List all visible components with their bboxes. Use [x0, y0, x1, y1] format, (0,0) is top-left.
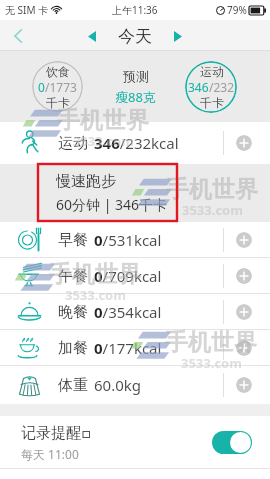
button[interactable]: 早餐 [0, 222, 270, 257]
staticText: 加餐 [58, 339, 88, 358]
button[interactable]: Add [236, 232, 252, 248]
button[interactable]: Add [236, 340, 252, 356]
button[interactable]: 晚餐 [0, 294, 270, 329]
button[interactable]: Next day [165, 23, 191, 49]
staticText: 千卡 [46, 95, 70, 110]
staticText: 0/354kcal [94, 302, 162, 322]
staticText: 运动 [58, 134, 88, 153]
staticText: 79% [227, 3, 247, 17]
button[interactable]: 运动 [185, 61, 237, 113]
staticText: 晚餐 [58, 303, 88, 322]
button[interactable]: Reminder toggle [212, 431, 252, 454]
staticText: 手机世界 [166, 175, 258, 204]
staticText: 手机世界 [49, 260, 141, 289]
staticText: 3533.com [182, 201, 243, 219]
button[interactable]: Add [236, 268, 252, 284]
button[interactable]: 慢速跑步 [0, 164, 270, 222]
button[interactable]: Back [0, 20, 36, 51]
button[interactable]: Add [236, 304, 252, 320]
button[interactable]: Previous day [79, 23, 105, 49]
staticText: 午餐 [58, 267, 88, 286]
staticText: 3533.com [73, 132, 134, 150]
staticText: 346 [188, 79, 209, 95]
staticText: /232 [209, 79, 235, 95]
staticText: 瘦88克 [115, 88, 156, 106]
staticText: 3533.com [65, 286, 126, 304]
staticText: /1773 [45, 79, 77, 95]
staticText: 体重 [58, 376, 88, 395]
staticText: 60.0kg [94, 375, 141, 395]
staticText: 3533.com [181, 354, 242, 372]
staticText: 346/232kcal [94, 133, 179, 153]
staticText: 0/709kcal [94, 266, 162, 286]
staticText: 预测 [123, 68, 149, 84]
button[interactable]: 记录提醒 [0, 416, 270, 469]
staticText: 千卡 [200, 95, 224, 110]
button[interactable]: 体重 [0, 366, 270, 404]
button[interactable]: 加餐 [0, 330, 270, 365]
button[interactable]: Add [236, 377, 252, 393]
staticText: 早餐 [58, 231, 88, 250]
staticText: 运动 [200, 64, 224, 79]
staticText: 0 [38, 79, 45, 95]
staticText: 每天 11:00 [21, 446, 79, 462]
staticText: 慢速跑步 [56, 172, 116, 191]
staticText: 0/531kcal [94, 230, 162, 250]
button[interactable]: 饮食 [32, 61, 83, 112]
button[interactable]: Add [236, 135, 252, 151]
staticText: 饮食 [46, 64, 70, 79]
staticText: 60分钟 | 346千卡 [56, 195, 168, 214]
staticText: 0/177kcal [94, 338, 162, 358]
staticText: 手机世界 [165, 328, 257, 357]
staticText: 记录提醒 [21, 424, 81, 443]
staticText: 无 SIM 卡 [5, 3, 49, 17]
staticText: 今天 [118, 26, 152, 47]
staticText: 上午11:36 [112, 3, 158, 17]
staticText: 手机世界 [57, 106, 149, 135]
button[interactable]: 午餐 [0, 258, 270, 293]
button[interactable]: 运动 [0, 122, 270, 164]
